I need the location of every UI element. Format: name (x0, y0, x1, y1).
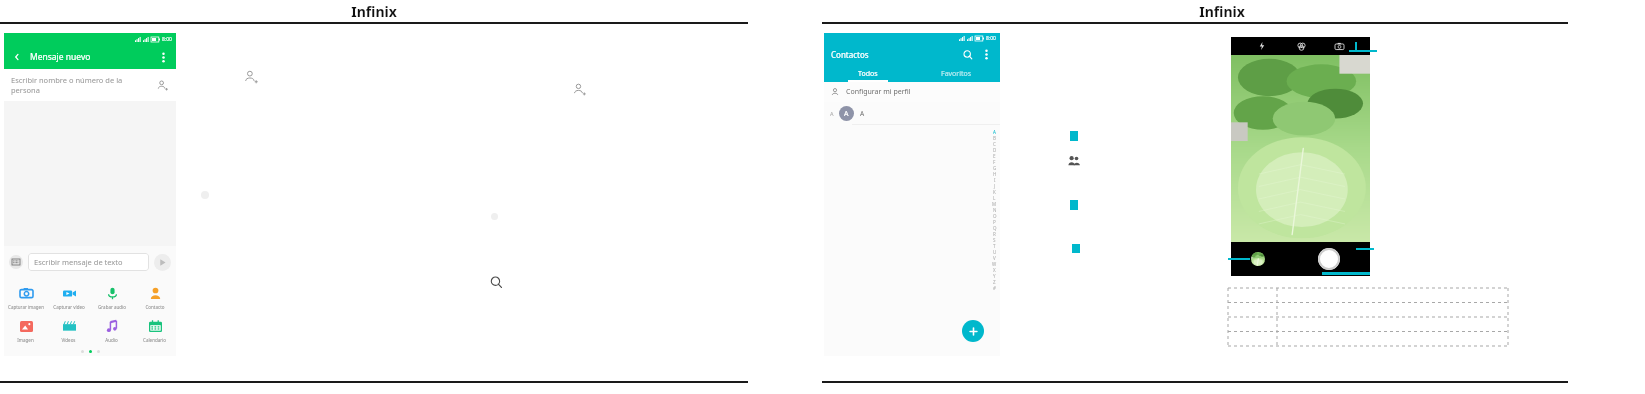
staticText: J (994, 183, 996, 189)
staticText: Favoritos (941, 69, 972, 79)
staticText: V (993, 255, 996, 261)
button[interactable]: A (824, 102, 1000, 124)
staticText: X (993, 267, 996, 273)
button[interactable]: Audio (90, 316, 133, 345)
staticText: L (993, 195, 996, 201)
staticText: A (844, 109, 849, 119)
staticText: Q (993, 225, 997, 231)
button[interactable]: Todos (824, 65, 912, 82)
staticText: R (993, 231, 996, 237)
button[interactable]: Add contact (155, 78, 169, 92)
staticText: C (993, 141, 996, 147)
staticText: T (993, 243, 996, 249)
staticText: Vídeos (61, 337, 76, 343)
staticText: S (993, 237, 996, 243)
button[interactable]: Contacto (133, 283, 176, 312)
staticText: Infinix (334, 2, 414, 21)
button[interactable]: Gallery (1251, 252, 1265, 266)
staticText: O (993, 213, 997, 219)
staticText: U (993, 249, 997, 255)
button[interactable]: Filters (1294, 39, 1308, 53)
staticText: H (993, 171, 997, 177)
staticText: Contacto (145, 304, 165, 310)
button[interactable]: Configurar mi perfil (824, 82, 1000, 102)
staticText: Todos (858, 69, 878, 79)
staticText: E (993, 153, 996, 159)
button[interactable]: Vídeos (47, 316, 90, 345)
button[interactable]: Grabar audio (90, 283, 133, 312)
staticText: Mensaje nuevo (30, 51, 91, 63)
button[interactable]: Escribir mensaje de texto (28, 253, 149, 271)
staticText: N (993, 207, 997, 213)
staticText: Escribir mensaje de texto (34, 257, 123, 267)
button[interactable]: More options (980, 48, 993, 61)
button[interactable]: Back (10, 50, 24, 64)
button[interactable]: Capturar imagen (4, 283, 47, 312)
staticText: Escribir nombre o número de la persona (11, 75, 155, 95)
staticText: Grabar audio (98, 304, 126, 310)
button[interactable]: Imagen (4, 316, 47, 345)
staticText: D (993, 147, 997, 153)
staticText: M (992, 201, 997, 207)
staticText: Calendario (143, 337, 166, 343)
staticText: B (993, 135, 996, 141)
staticText: A (860, 109, 865, 118)
staticText: 8:00 (162, 36, 172, 43)
staticText: K (993, 189, 996, 195)
staticText: A (993, 129, 996, 135)
button[interactable]: Search (960, 47, 975, 62)
button[interactable]: Capturar vídeo (47, 283, 90, 312)
staticText: W (992, 261, 997, 267)
staticText: I (994, 177, 996, 183)
button[interactable]: Shutter (1318, 248, 1340, 270)
button[interactable]: Keyboard (9, 255, 23, 269)
staticText: Infinix (1182, 2, 1262, 21)
staticText: P (993, 219, 996, 225)
staticText: Audio (105, 337, 118, 343)
staticText: 8:00 (986, 35, 996, 42)
button[interactable]: Calendario (133, 316, 176, 345)
staticText: Capturar vídeo (53, 304, 85, 310)
staticText: G (993, 165, 997, 171)
staticText: Y (993, 273, 996, 279)
staticText: # (993, 285, 996, 291)
staticText: F (993, 159, 996, 165)
staticText: Imagen (17, 337, 34, 343)
button[interactable]: Add contact (962, 320, 984, 342)
staticText: Configurar mi perfil (846, 87, 911, 97)
staticText: Capturar imagen (8, 304, 44, 310)
button[interactable]: Flash (1255, 39, 1269, 53)
button[interactable]: Switch camera (1332, 39, 1346, 53)
staticText: Contactos (831, 49, 869, 60)
button[interactable]: More options (156, 50, 170, 64)
button[interactable]: Send (154, 254, 171, 271)
staticText: Z (993, 279, 996, 285)
button[interactable]: Favoritos (912, 65, 1000, 82)
staticText: A (830, 110, 834, 117)
